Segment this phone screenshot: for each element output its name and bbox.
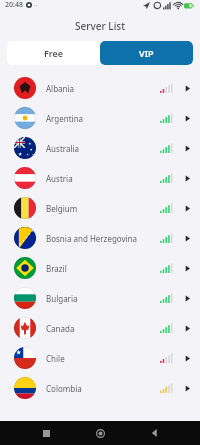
staticText: Austria	[46, 173, 160, 184]
button[interactable]: Open Belgium	[180, 201, 194, 215]
staticText: Chile	[46, 353, 160, 364]
staticText: Colombia	[46, 383, 160, 394]
staticText: Australia	[46, 143, 160, 154]
button[interactable]: Open Canada	[180, 321, 194, 335]
button[interactable]: Open Bosnia and Herzegovina	[180, 231, 194, 245]
staticText: Server List	[0, 19, 200, 33]
button[interactable]: Chile	[0, 343, 200, 373]
staticText: Albania	[46, 83, 160, 94]
button[interactable]: Back	[146, 424, 164, 442]
button[interactable]: Colombia	[0, 373, 200, 403]
button[interactable]: Belgium	[0, 193, 200, 223]
button[interactable]: Open Albania	[180, 81, 194, 95]
staticText: ··	[34, 1, 38, 9]
button[interactable]: Albania	[0, 73, 200, 103]
button[interactable]: Canada	[0, 313, 200, 343]
staticText: VIP	[139, 47, 154, 59]
button[interactable]: Brazil	[0, 253, 200, 283]
button[interactable]: Bosnia and Herzegovina	[0, 223, 200, 253]
staticText: 20:48	[5, 0, 23, 10]
button[interactable]: Open Bulgaria	[180, 291, 194, 305]
staticText: Canada	[46, 323, 160, 334]
staticText: Bulgaria	[46, 293, 160, 304]
button[interactable]: Home	[91, 424, 109, 442]
button[interactable]: Argentina	[0, 103, 200, 133]
button[interactable]: Free	[7, 41, 100, 65]
button[interactable]: Open Colombia	[180, 381, 194, 395]
button[interactable]: Recents	[37, 424, 55, 442]
button[interactable]: Open Australia	[180, 141, 194, 155]
staticText: Free	[44, 47, 64, 59]
button[interactable]: Australia	[0, 133, 200, 163]
button[interactable]: Austria	[0, 163, 200, 193]
button[interactable]: Open Austria	[180, 171, 194, 185]
button[interactable]: Open Chile	[180, 351, 194, 365]
button[interactable]: Open Argentina	[180, 111, 194, 125]
staticText: Brazil	[46, 263, 160, 274]
staticText: Argentina	[46, 113, 160, 124]
staticText: Bosnia and Herzegovina	[46, 233, 160, 244]
button[interactable]: Bulgaria	[0, 283, 200, 313]
button[interactable]: Open Brazil	[180, 261, 194, 275]
staticText: Belgium	[46, 203, 160, 214]
button[interactable]: VIP	[100, 41, 193, 65]
